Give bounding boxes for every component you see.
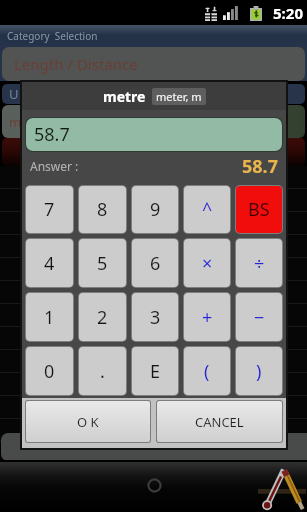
button[interactable]: Home <box>143 474 166 497</box>
button[interactable]: CANCEL <box>157 401 282 442</box>
staticText: Length / Distance <box>14 54 138 74</box>
staticText: Category Selection <box>7 29 98 43</box>
button[interactable]: ^ <box>184 186 230 233</box>
staticText: ) <box>256 359 262 384</box>
button[interactable]: BS <box>236 186 282 233</box>
button[interactable]: + <box>184 293 230 341</box>
button[interactable]: ) <box>236 347 282 395</box>
button[interactable]: 3 <box>132 293 178 341</box>
staticText: Answer : <box>30 158 79 174</box>
button[interactable] <box>0 166 307 189</box>
staticText: m <box>9 113 22 131</box>
staticText: 5 <box>97 251 108 276</box>
button[interactable]: U <box>2 84 305 104</box>
button[interactable] <box>0 419 307 442</box>
staticText: O K <box>77 413 99 431</box>
button[interactable]: ( <box>184 347 230 395</box>
staticText: 7 <box>44 197 55 222</box>
button[interactable]: 1 <box>26 293 73 341</box>
button[interactable] <box>0 350 307 373</box>
staticText: 3 <box>150 305 161 330</box>
staticText: 5:20 <box>273 3 303 23</box>
staticText: 9 <box>150 197 161 222</box>
staticText: meter, m <box>156 89 202 104</box>
button[interactable] <box>0 281 307 304</box>
button[interactable]: O K <box>26 401 150 442</box>
button[interactable] <box>0 396 307 419</box>
staticText: ( <box>204 359 210 384</box>
staticText: ÷ <box>254 251 265 276</box>
button[interactable]: Length / Distance <box>2 47 305 81</box>
staticText: + <box>202 305 213 330</box>
staticText: 1 <box>44 305 55 330</box>
button[interactable] <box>0 189 307 212</box>
staticText: 58.7 <box>34 122 70 147</box>
staticText: E <box>150 359 161 384</box>
button[interactable]: E <box>132 347 178 395</box>
button[interactable] <box>0 258 307 281</box>
button[interactable]: 6 <box>132 239 178 287</box>
button[interactable]: ÷ <box>236 239 282 287</box>
staticText: U <box>9 85 19 103</box>
staticText: 8 <box>97 197 108 222</box>
button[interactable]: 4 <box>26 239 73 287</box>
staticText: 0 <box>44 359 55 384</box>
staticText: BS <box>248 197 270 222</box>
button[interactable] <box>0 327 307 350</box>
button[interactable]: − <box>236 293 282 341</box>
button[interactable]: . <box>79 347 126 395</box>
staticText: 58.7 <box>242 154 278 179</box>
button[interactable] <box>0 373 307 396</box>
staticText: × <box>202 251 213 276</box>
button[interactable]: × <box>184 239 230 287</box>
button[interactable] <box>2 138 305 166</box>
staticText: 6 <box>150 251 161 276</box>
button[interactable]: 58.7 <box>26 118 282 151</box>
button[interactable] <box>0 212 307 235</box>
button[interactable]: m <box>2 105 305 138</box>
button[interactable]: 7 <box>26 186 73 233</box>
staticText: metre <box>103 87 146 106</box>
staticText: ^ <box>202 197 213 222</box>
button[interactable]: 0 <box>26 347 73 395</box>
staticText: − <box>254 305 265 330</box>
button[interactable]: 9 <box>132 186 178 233</box>
button[interactable] <box>0 304 307 327</box>
button[interactable]: 5 <box>79 239 126 287</box>
staticText: . <box>100 359 105 384</box>
staticText: 4 <box>44 251 55 276</box>
staticText: 2 <box>97 305 108 330</box>
staticText: CANCEL <box>195 413 244 431</box>
button[interactable] <box>0 235 307 258</box>
button[interactable]: 2 <box>79 293 126 341</box>
button[interactable]: 8 <box>79 186 126 233</box>
